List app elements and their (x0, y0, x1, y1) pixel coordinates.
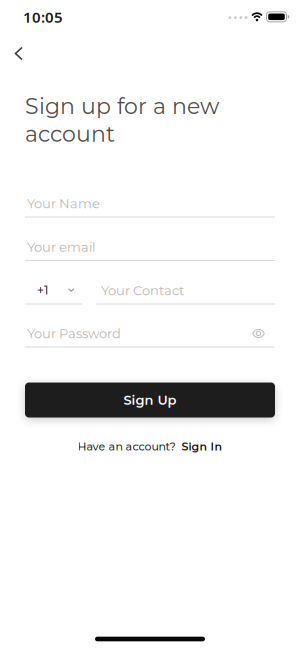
button[interactable]: Your Name (25, 183, 275, 217)
staticText: Sign In (181, 440, 222, 453)
button[interactable]: Show password (246, 321, 270, 345)
staticText: Your email (27, 239, 95, 255)
button[interactable]: Your email (25, 227, 275, 261)
staticText: +1 (37, 283, 48, 297)
button[interactable]: Your Password (25, 313, 275, 347)
staticText: Your Contact (101, 283, 184, 298)
button[interactable]: Country code +1 (25, 270, 82, 304)
button[interactable]: Sign Up (25, 382, 275, 417)
staticText: 10:05 (23, 7, 63, 27)
button[interactable]: Back (5, 39, 33, 67)
staticText: Sign up for a new account (25, 93, 219, 147)
button[interactable]: Your Contact (96, 270, 275, 304)
staticText: Have an account? (77, 440, 175, 453)
staticText: Your Name (27, 196, 100, 211)
staticText: Your Password (27, 326, 121, 341)
button[interactable]: Sign In (181, 440, 222, 453)
staticText: Sign Up (123, 392, 176, 408)
